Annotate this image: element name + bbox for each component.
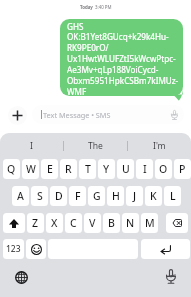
staticText: I xyxy=(30,140,33,152)
button[interactable]: V xyxy=(84,213,101,233)
staticText: U xyxy=(122,162,130,176)
button[interactable]: L xyxy=(164,186,181,206)
button[interactable]: M xyxy=(141,213,158,233)
button[interactable]: P xyxy=(174,159,191,179)
staticText: I'm xyxy=(153,140,166,152)
button[interactable]: J xyxy=(126,186,143,206)
staticText: F xyxy=(75,189,81,203)
button[interactable]: H xyxy=(107,186,124,206)
button[interactable]: X xyxy=(46,213,63,233)
staticText: V xyxy=(89,216,96,230)
button[interactable]: Backspace xyxy=(166,213,188,233)
button[interactable]: Dictation xyxy=(161,266,181,286)
staticText: C xyxy=(70,216,77,230)
staticText: E xyxy=(47,162,53,176)
staticText: The xyxy=(88,140,103,152)
staticText: S xyxy=(37,189,43,203)
staticText: J xyxy=(133,189,137,203)
button[interactable]: The xyxy=(63,133,127,158)
staticText: D xyxy=(55,189,63,203)
button[interactable]: Shift xyxy=(3,213,25,233)
button[interactable]: U xyxy=(117,159,134,179)
staticText: M xyxy=(145,216,155,230)
staticText: O xyxy=(159,162,168,176)
button[interactable]: Return xyxy=(141,239,190,259)
button[interactable]: R xyxy=(60,159,77,179)
button[interactable]: N xyxy=(122,213,139,233)
staticText: 3:40 PM xyxy=(95,4,112,10)
staticText: Text Message • SMS xyxy=(43,110,111,120)
button[interactable]: Add attachment xyxy=(8,106,27,125)
staticText: X xyxy=(51,216,58,230)
staticText: T xyxy=(85,162,91,176)
staticText: W xyxy=(26,162,36,176)
button[interactable]: W xyxy=(22,159,39,179)
button[interactable]: G xyxy=(88,186,105,206)
staticText: L xyxy=(170,189,176,203)
button[interactable]: 123 xyxy=(3,239,24,259)
staticText: H xyxy=(112,189,120,203)
button[interactable]: K xyxy=(145,186,162,206)
staticText: Today xyxy=(80,4,95,10)
button[interactable]: Q xyxy=(3,159,20,179)
button[interactable]: Y xyxy=(98,159,115,179)
staticText: R xyxy=(65,162,72,176)
button[interactable]: O xyxy=(155,159,172,179)
staticText: B xyxy=(108,216,115,230)
button[interactable]: Text Message • SMS xyxy=(32,105,184,124)
staticText: P xyxy=(179,162,186,176)
button[interactable]: D xyxy=(50,186,67,206)
button[interactable]: I xyxy=(136,159,153,179)
button[interactable]: S xyxy=(31,186,48,206)
button[interactable]: C xyxy=(65,213,82,233)
button[interactable]: I'm xyxy=(127,133,191,158)
staticText: G xyxy=(93,189,101,203)
staticText: A xyxy=(17,189,24,203)
staticText: 123 xyxy=(6,243,21,255)
staticText: Y xyxy=(103,162,110,176)
staticText: GHS OK:B1Yet8GUcq+k29k4Hu- RK9PE0rO/ Ux1… xyxy=(67,21,179,97)
button[interactable]: Change keyboard xyxy=(11,267,31,287)
staticText: K xyxy=(150,189,157,203)
staticText: Q xyxy=(7,162,16,176)
button[interactable]: B xyxy=(103,213,120,233)
button[interactable]: F xyxy=(69,186,86,206)
button[interactable]: T xyxy=(79,159,96,179)
button[interactable]: A xyxy=(12,186,29,206)
staticText: Z xyxy=(32,216,39,230)
button[interactable]: I xyxy=(0,133,63,158)
button[interactable]: Emoji xyxy=(26,239,46,259)
staticText: N xyxy=(126,216,135,230)
button[interactable]: E xyxy=(41,159,58,179)
staticText: I xyxy=(143,162,147,176)
button[interactable]: Z xyxy=(27,213,44,233)
